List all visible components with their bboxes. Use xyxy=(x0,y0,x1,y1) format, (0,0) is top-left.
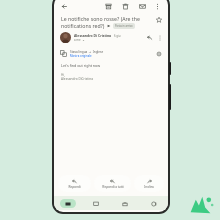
staticText: Rispondi xyxy=(68,185,81,189)
staticText: Hi, xyxy=(61,73,66,77)
button[interactable]: Rispondi xyxy=(58,175,91,192)
button[interactable]: Rispondi a tutti xyxy=(94,175,131,192)
button[interactable]: Mark unread xyxy=(137,1,148,12)
button[interactable]: Delete xyxy=(120,1,131,12)
button[interactable]: Meet xyxy=(139,196,168,210)
button[interactable]: Mail xyxy=(54,196,82,210)
button[interactable]: Back xyxy=(59,1,70,12)
staticText: Alessandro DiCristina xyxy=(61,77,93,81)
staticText: Inoltra xyxy=(144,185,154,189)
button[interactable]: Posta in arrivo xyxy=(115,24,133,28)
staticText: Stava lingua → Inglese xyxy=(70,50,104,54)
button[interactable]: Spaces xyxy=(110,196,139,210)
staticText: Le notifiche sono rosse? (Are the xyxy=(61,15,140,22)
button[interactable]: More options xyxy=(155,33,164,42)
button[interactable]: Star xyxy=(154,15,164,25)
button[interactable]: Chat xyxy=(82,196,110,210)
button[interactable]: Alessandro Di Cristina xyxy=(60,32,164,43)
staticText: notifications red?) xyxy=(61,22,105,29)
button[interactable]: Reply xyxy=(145,33,155,43)
staticText: Posta in arrivo xyxy=(115,24,133,28)
staticText: Alessandro Di Cristina xyxy=(74,33,112,38)
staticText: Let's find out right now xyxy=(61,63,101,68)
button[interactable]: Inoltra xyxy=(134,175,164,192)
button[interactable]: More options xyxy=(152,1,163,12)
staticText: 6 giu xyxy=(114,34,121,38)
staticText: Mostra originale xyxy=(70,54,92,58)
button[interactable]: Stava lingua → Inglese xyxy=(60,48,163,59)
button[interactable]: Translation settings xyxy=(154,49,163,58)
staticText: a me xyxy=(74,38,81,42)
staticText: Rispondi a tutti xyxy=(102,185,124,189)
button[interactable]: Archive xyxy=(103,1,114,12)
